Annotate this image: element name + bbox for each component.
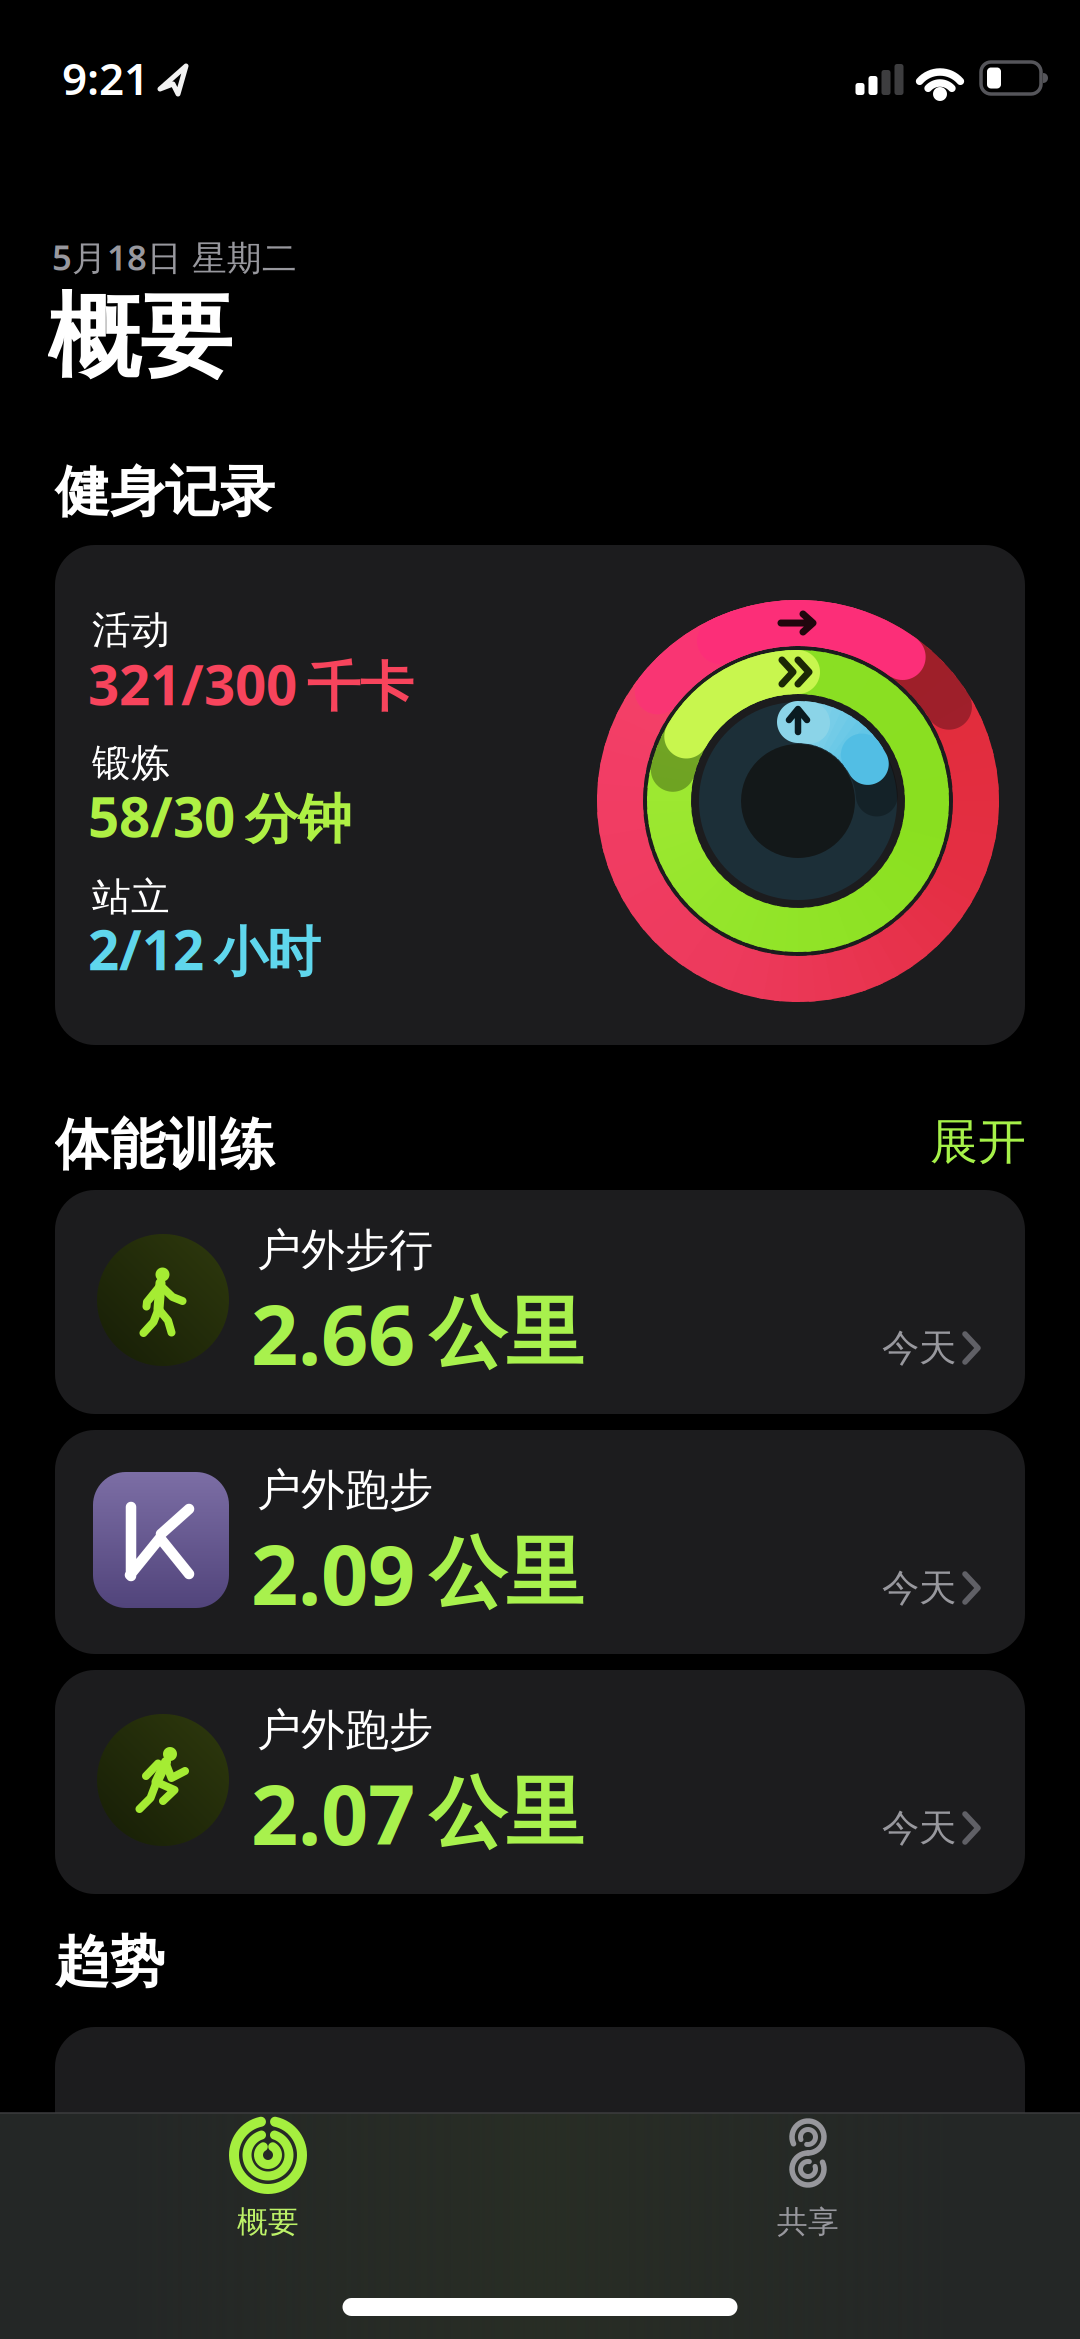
staticText: 公里 bbox=[429, 1526, 583, 1621]
button[interactable]: 户外跑步 bbox=[55, 1430, 1025, 1654]
staticText: 5月18日 星期二 bbox=[52, 234, 297, 280]
button[interactable]: 展开 bbox=[826, 1097, 1026, 1187]
staticText: 概要 bbox=[237, 2203, 299, 2241]
staticText: 2.66 bbox=[251, 1278, 415, 1388]
staticText: 小时 bbox=[214, 920, 320, 985]
staticText: 今天 bbox=[882, 1805, 956, 1851]
staticText: 公里 bbox=[429, 1766, 583, 1861]
staticText: 站立 bbox=[92, 873, 170, 921]
staticText: 2/12 bbox=[88, 913, 204, 985]
staticText: 321/300 bbox=[88, 648, 297, 720]
staticText: 公里 bbox=[429, 1286, 583, 1381]
staticText: 户外跑步 bbox=[257, 1703, 433, 1757]
staticText: 今天 bbox=[882, 1565, 956, 1611]
staticText: 2.09 bbox=[251, 1518, 415, 1628]
staticText: 体能训练 bbox=[55, 1111, 275, 1178]
staticText: 9:21 bbox=[62, 49, 149, 107]
staticText: 活动 bbox=[92, 606, 170, 654]
staticText: 概要 bbox=[48, 280, 232, 393]
button[interactable]: 概要 bbox=[148, 2113, 388, 2237]
staticText: 今天 bbox=[882, 1325, 956, 1371]
staticText: 户外跑步 bbox=[257, 1463, 433, 1517]
staticText: 锻炼 bbox=[92, 739, 170, 787]
staticText: 趋势 bbox=[55, 1928, 165, 1995]
button[interactable]: 户外跑步 bbox=[55, 1670, 1025, 1894]
button[interactable]: 户外步行 bbox=[55, 1190, 1025, 1414]
staticText: 2.07 bbox=[251, 1758, 415, 1868]
staticText: 展开 bbox=[930, 1112, 1026, 1171]
button[interactable]: 活动 bbox=[55, 545, 1025, 1045]
staticText: 58/30 bbox=[88, 780, 235, 852]
staticText: 户外步行 bbox=[257, 1223, 433, 1277]
staticText: 千卡 bbox=[307, 655, 413, 720]
staticText: 健身记录 bbox=[55, 458, 275, 525]
staticText: 分钟 bbox=[245, 787, 351, 852]
staticText: 共享 bbox=[777, 2203, 839, 2241]
button[interactable]: 共享 bbox=[688, 2113, 928, 2237]
